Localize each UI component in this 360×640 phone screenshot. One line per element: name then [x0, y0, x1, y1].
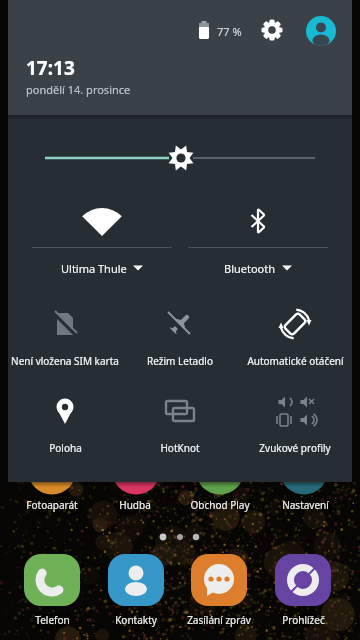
staticText: Zasílání zpráv [187, 613, 251, 627]
staticText: Není vložena SIM karta [11, 354, 119, 368]
staticText: Automatické otáčení [247, 354, 344, 368]
button[interactable] [10, 389, 120, 465]
staticText: Fotoaparát [26, 498, 78, 512]
button[interactable]: Zasílání zpráv [180, 554, 258, 627]
button[interactable]: Bluetooth [188, 195, 328, 300]
button[interactable] [10, 302, 120, 378]
button[interactable] [125, 389, 235, 465]
staticText: Kontakty [115, 613, 157, 627]
button[interactable] [260, 18, 284, 42]
staticText: Nastavení [282, 498, 329, 512]
staticText: Telefon [35, 613, 70, 627]
button[interactable] [240, 302, 350, 378]
staticText: 17:13 [26, 55, 75, 81]
button[interactable]: Prohlížeč [264, 554, 342, 627]
button[interactable]: Ultima Thule [32, 195, 172, 300]
staticText: Poloha [49, 441, 82, 455]
staticText: Prohlížeč [282, 613, 325, 627]
staticText: Hudba [119, 498, 151, 512]
staticText: 77 % [217, 24, 242, 39]
staticText: pondělí 14. prosince [26, 82, 131, 97]
staticText: Obchod Play [190, 498, 250, 512]
staticText: Režim Letadlo [147, 354, 213, 368]
staticText: Ultima Thule [61, 261, 127, 276]
button[interactable] [240, 389, 350, 465]
button[interactable] [306, 16, 336, 46]
button[interactable] [125, 302, 235, 378]
staticText: Bluetooth [224, 261, 276, 276]
button[interactable]: Telefon [13, 554, 91, 627]
button[interactable]: Kontakty [97, 554, 175, 627]
staticText: Zvukové profily [259, 441, 331, 455]
staticText: HotKnot [160, 441, 200, 455]
